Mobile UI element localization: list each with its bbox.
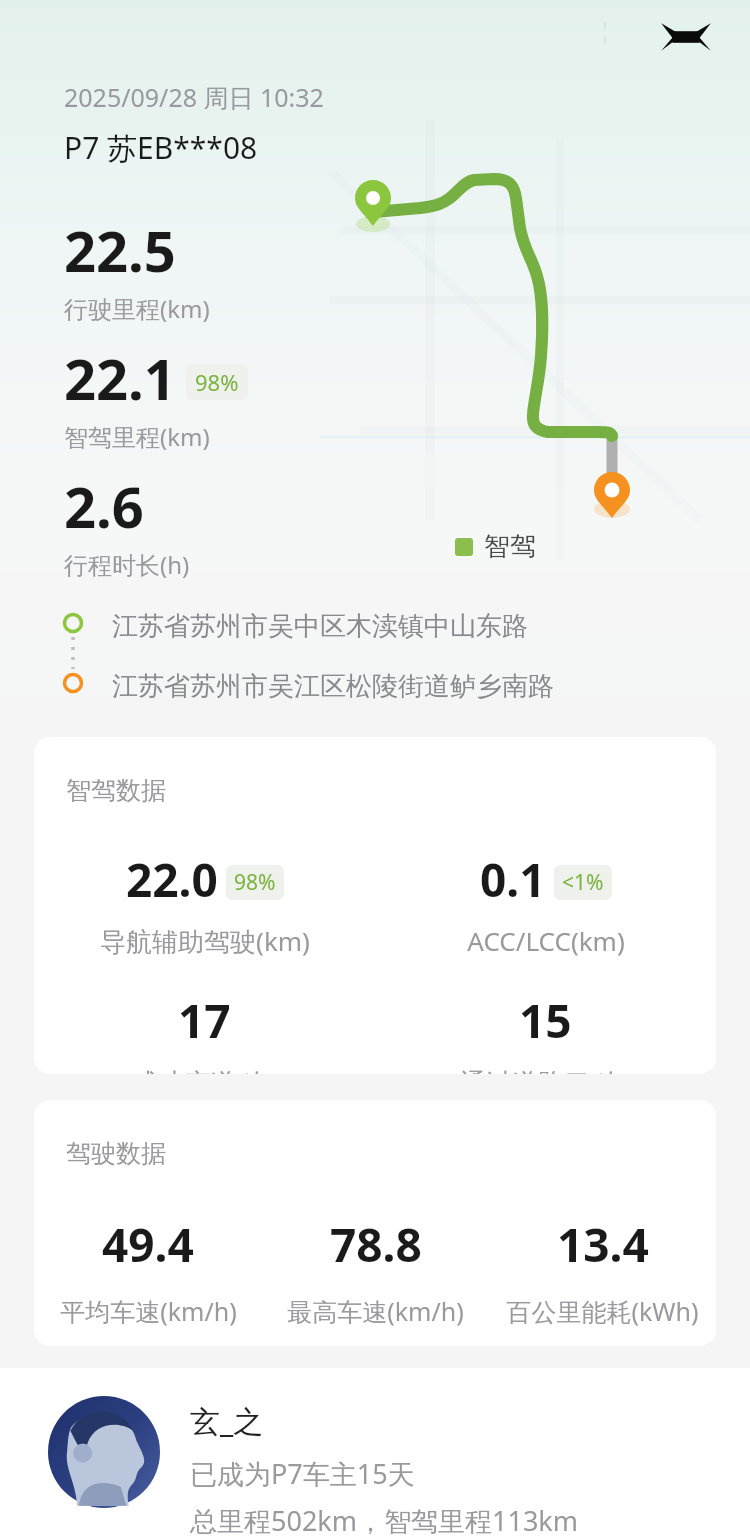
staticText: 成功变道(次) [132, 1064, 278, 1074]
staticText: 2025/09/28 周日 10:32 [64, 80, 324, 114]
button[interactable]: 驾驶数据 [34, 1100, 716, 1346]
staticText: 平均车速(km/h) [60, 1294, 237, 1328]
staticText: 17 [178, 989, 231, 1052]
staticText: 已成为P7车主15天 [190, 1455, 415, 1492]
staticText: <1% [562, 868, 604, 897]
staticText: 78.8 [330, 1213, 422, 1276]
staticText: 22.5 [64, 212, 176, 288]
staticText: 98% [234, 868, 276, 897]
staticText: 行驶里程(km) [64, 292, 210, 325]
staticText: 0.1 [480, 848, 546, 911]
button[interactable]: XPeng logo [655, 14, 717, 60]
staticText: 49.4 [102, 1213, 194, 1276]
staticText: 总里程502km，智驾里程113km [190, 1502, 578, 1539]
staticText: 智驾 [484, 530, 536, 563]
staticText: 驾驶数据 [66, 1138, 166, 1169]
staticText: 智驾里程(km) [64, 420, 210, 453]
staticText: 百公里能耗(kWh) [506, 1294, 699, 1328]
staticText: 22.0 [126, 848, 218, 911]
staticText: 98% [195, 367, 239, 397]
staticText: P7 苏EB***08 [64, 127, 258, 168]
staticText: 22.1 [64, 340, 176, 416]
staticText: 江苏省苏州市吴中区木渎镇中山东路 [112, 610, 528, 643]
staticText: 最高车速(km/h) [287, 1294, 464, 1328]
staticText: 15 [519, 989, 572, 1052]
staticText: 智驾数据 [66, 775, 166, 806]
staticText: 导航辅助驾驶(km) [100, 923, 310, 959]
button[interactable]: 玄_之 [0, 1368, 750, 1539]
staticText: 玄_之 [190, 1400, 264, 1441]
staticText: 2.6 [64, 468, 144, 544]
staticText: ACC/LCC(km) [467, 923, 625, 958]
button[interactable]: 智驾数据 [34, 737, 716, 1074]
staticText: 13.4 [557, 1213, 649, 1276]
staticText: 通过道路口(次) [460, 1064, 632, 1074]
staticText: 江苏省苏州市吴江区松陵街道鲈乡南路 [112, 670, 554, 703]
staticText: 行程时长(h) [64, 548, 190, 581]
